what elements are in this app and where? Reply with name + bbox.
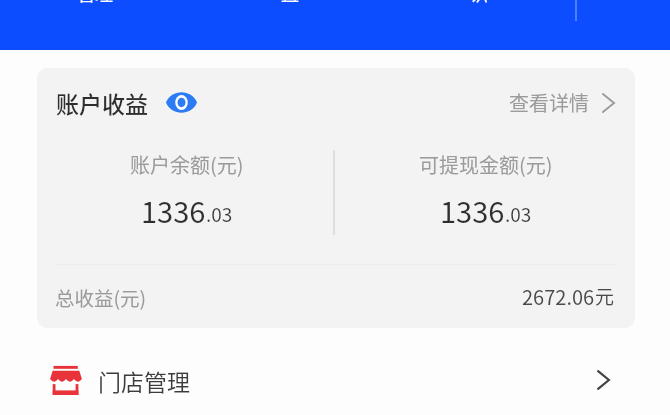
staticText: 账户收益 bbox=[56, 86, 148, 119]
staticText: 1336 bbox=[440, 189, 505, 231]
button[interactable]: 管理 bbox=[77, 0, 113, 6]
staticText: 直 bbox=[281, 0, 299, 6]
button[interactable]: Toggle balance visibility bbox=[166, 93, 197, 112]
staticText: 总收益(元) bbox=[55, 283, 147, 311]
staticText: .03 bbox=[206, 200, 233, 228]
button[interactable]: 直 bbox=[281, 0, 299, 6]
button[interactable]: 识 bbox=[470, 0, 488, 6]
staticText: 查看详情 bbox=[509, 88, 589, 117]
staticText: 管理 bbox=[77, 0, 113, 6]
staticText: 1336 bbox=[141, 189, 206, 231]
staticText: 可提现金额(元) bbox=[419, 150, 553, 179]
staticText: 识 bbox=[470, 0, 488, 6]
staticText: 账户余额(元) bbox=[130, 150, 244, 179]
staticText: 门店管理 bbox=[98, 364, 190, 397]
button[interactable]: 查看详情 bbox=[509, 88, 615, 117]
staticText: 元 bbox=[595, 282, 615, 310]
staticText: 2672.06 bbox=[522, 282, 595, 311]
staticText: .03 bbox=[505, 200, 532, 228]
button[interactable]: 门店管理 bbox=[0, 328, 670, 415]
